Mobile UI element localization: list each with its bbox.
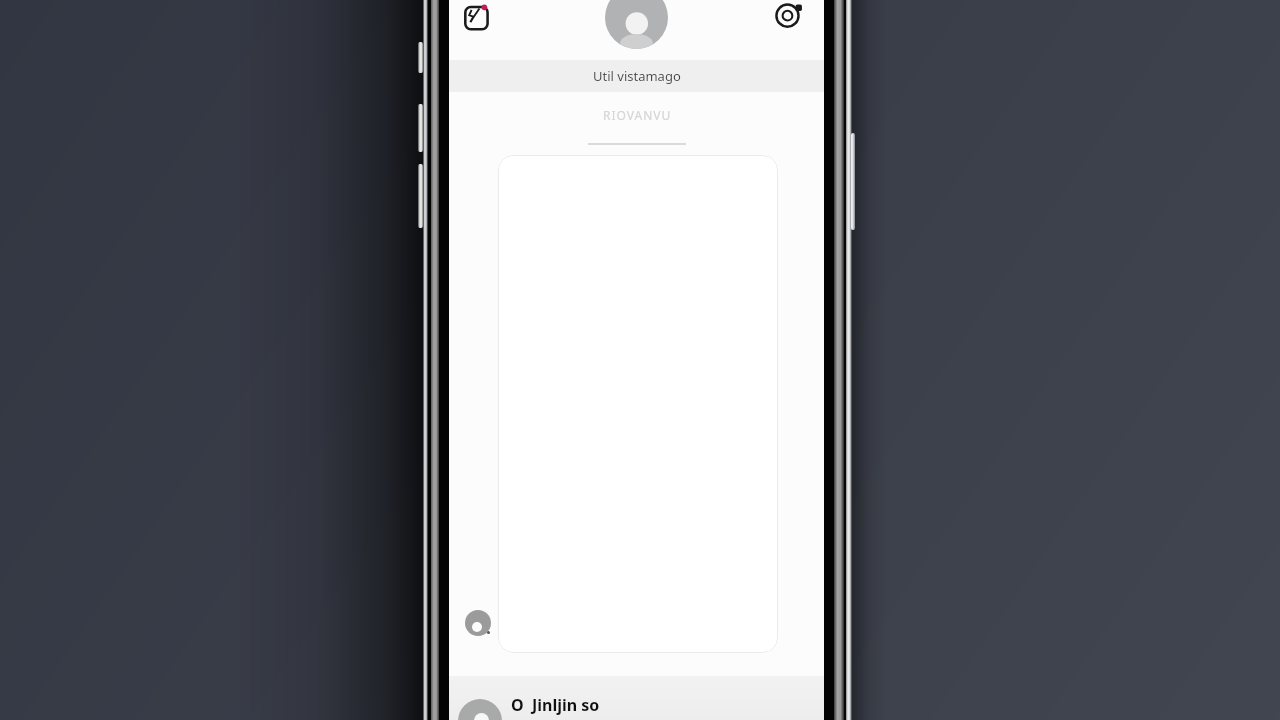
staticText: RIOVANVU bbox=[603, 107, 672, 123]
staticText: Util vistamago bbox=[593, 67, 681, 85]
button[interactable]: Util vistamago bbox=[449, 60, 824, 92]
button[interactable]: Flash notifications bbox=[458, 1, 492, 35]
button[interactable]: Sender avatar bbox=[458, 699, 502, 720]
button[interactable]: RIOVANVU bbox=[577, 100, 697, 145]
button[interactable]: Profile bbox=[605, 0, 668, 49]
button[interactable]: Contact avatar bbox=[465, 610, 491, 636]
button[interactable]: Camera bbox=[772, 0, 806, 34]
staticText: O Jinljin so bbox=[511, 694, 600, 716]
